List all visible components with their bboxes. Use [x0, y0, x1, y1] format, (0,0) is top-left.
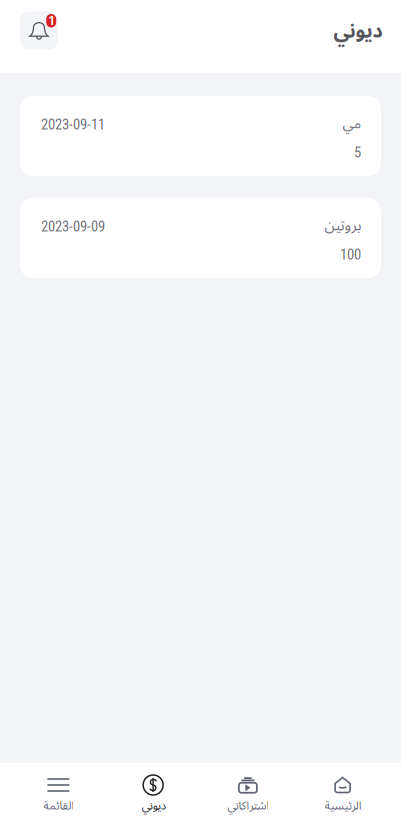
button[interactable]: ديوني: [106, 775, 201, 818]
staticText: القائمة: [43, 794, 74, 818]
button[interactable]: الرئيسية: [295, 775, 390, 818]
staticText: 2023-09-11: [41, 116, 105, 133]
button[interactable]: Notifications: [20, 8, 58, 49]
staticText: 1: [49, 13, 54, 28]
staticText: 5: [354, 144, 361, 161]
button[interactable]: القائمة: [11, 775, 106, 818]
staticText: ديوني: [141, 794, 165, 818]
button[interactable]: اشتراكاتي: [200, 775, 295, 818]
staticText: 2023-09-09: [41, 218, 105, 235]
button[interactable]: 2023-09-11: [20, 96, 381, 176]
staticText: مي: [342, 108, 361, 139]
staticText: الرئيسية: [324, 794, 361, 818]
staticText: 100: [340, 246, 361, 263]
button[interactable]: 2023-09-09: [20, 198, 381, 278]
staticText: ديوني: [333, 10, 382, 52]
staticText: بروتين: [324, 210, 361, 241]
staticText: اشتراكاتي: [227, 794, 269, 818]
